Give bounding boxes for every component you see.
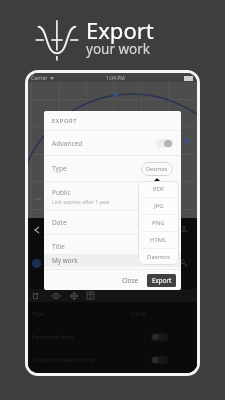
staticText: PDF [153,185,165,193]
button[interactable]: Distance between points [28,351,197,368]
staticText: Carrier [31,75,48,82]
button[interactable]: Public [52,182,181,210]
button[interactable]: Advanced [52,131,173,155]
button[interactable]: Type [52,156,173,181]
staticText: EXPORT [52,117,78,125]
staticText: Desmos [147,253,170,261]
button[interactable]: HTML [138,232,179,248]
button[interactable]: Table [84,289,97,302]
button[interactable]: Desmos [138,249,179,265]
button[interactable]: Close [117,273,143,288]
button[interactable]: Export [147,274,176,287]
staticText: My work [52,256,78,265]
button[interactable]: Delete [29,289,42,302]
button[interactable]: JPG [138,198,179,214]
staticText: Advanced [52,139,83,148]
staticText: HTML [150,236,167,244]
staticText: Desmos [146,165,168,173]
staticText: Type [32,310,44,317]
button[interactable]: PNG [138,215,179,231]
staticText: Type [52,164,67,173]
button[interactable]: Parametric form [28,328,197,345]
button[interactable]: Settings [180,259,188,267]
staticText: 1:04 PM [106,75,125,82]
staticText: Close [122,276,138,285]
button[interactable]: Date [52,211,181,234]
button[interactable]: PDF [138,181,179,197]
staticText: Export [152,276,172,285]
button[interactable]: Back [33,226,41,234]
staticText: Export [86,15,154,45]
staticText: Title [52,242,65,251]
staticText: PNG [152,219,165,227]
staticText: Parametric form [32,333,74,340]
button[interactable]: Share [180,225,188,233]
staticText: Public [52,188,71,197]
staticText: Date [52,218,67,227]
staticText: Link expires after 1 year [52,198,111,205]
staticText: Distance between points [32,356,95,363]
button[interactable]: Move [67,289,80,302]
button[interactable]: Hide [49,289,62,302]
button[interactable]: Title [44,235,181,269]
staticText: your work [86,40,151,58]
staticText: JPG [154,202,164,210]
staticText: Circle [132,310,146,317]
